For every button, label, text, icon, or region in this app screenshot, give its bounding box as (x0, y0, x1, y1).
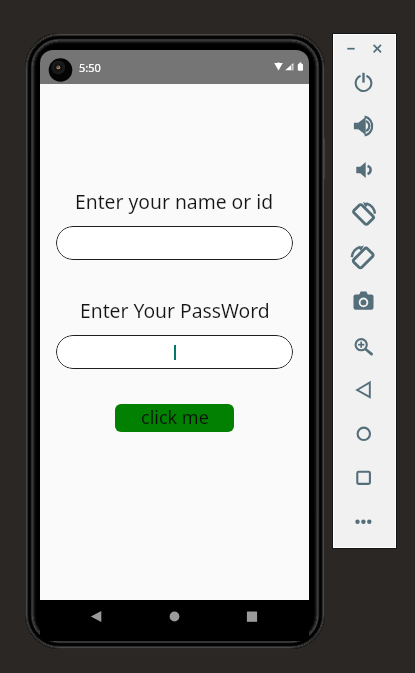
button[interactable]: Close (367, 39, 387, 59)
button[interactable]: Back (349, 375, 379, 405)
staticText: 5:50 (79, 60, 101, 75)
button[interactable]: Take screenshot (349, 287, 379, 317)
button[interactable]: Back (80, 601, 112, 633)
button[interactable]: Zoom in (349, 331, 379, 361)
button[interactable]: Minimize (341, 39, 361, 59)
button[interactable]: Home (159, 601, 191, 633)
button[interactable]: Power (349, 67, 379, 97)
button[interactable]: Rotate right (349, 199, 379, 229)
staticText: click me (141, 405, 209, 430)
button[interactable] (56, 226, 293, 260)
button[interactable]: Overview (349, 463, 379, 493)
button[interactable]: Home (349, 419, 379, 449)
staticText: Enter your name or id (75, 188, 274, 214)
staticText: Enter Your PassWord (80, 297, 270, 323)
button[interactable]: Recent apps (236, 601, 268, 633)
button[interactable]: Rotate left (349, 243, 379, 273)
button[interactable]: click me (115, 404, 234, 432)
button[interactable]: Volume down (349, 155, 379, 185)
button[interactable]: More (349, 507, 379, 537)
button[interactable] (56, 335, 293, 369)
button[interactable]: Volume up (349, 111, 379, 141)
